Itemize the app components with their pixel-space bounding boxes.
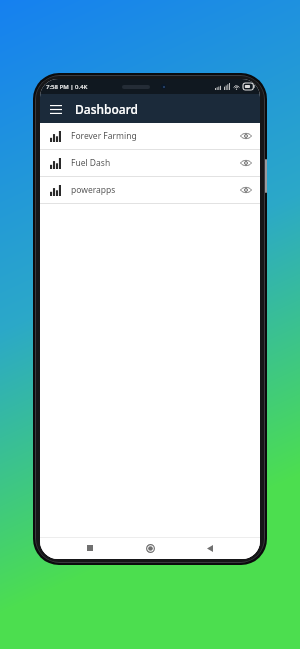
staticText: Dashboard [75,101,138,117]
button[interactable]: Open navigation menu [44,97,68,121]
button[interactable]: Fuel Dash [40,150,260,176]
button[interactable]: Back [200,538,220,558]
button[interactable]: Toggle visibility for Fuel Dash [238,155,254,171]
button[interactable]: Recent apps [80,538,100,558]
staticText: Forever Farming [71,130,238,142]
button[interactable]: Toggle visibility for Forever Farming [238,128,254,144]
button[interactable]: Home [140,538,160,558]
staticText: Fuel Dash [71,157,238,169]
staticText: powerapps [71,184,238,196]
button[interactable]: Toggle visibility for powerapps [238,182,254,198]
staticText: 7:58 PM | 0.4K [46,83,88,91]
button[interactable]: Forever Farming [40,123,260,149]
button[interactable]: powerapps [40,177,260,203]
